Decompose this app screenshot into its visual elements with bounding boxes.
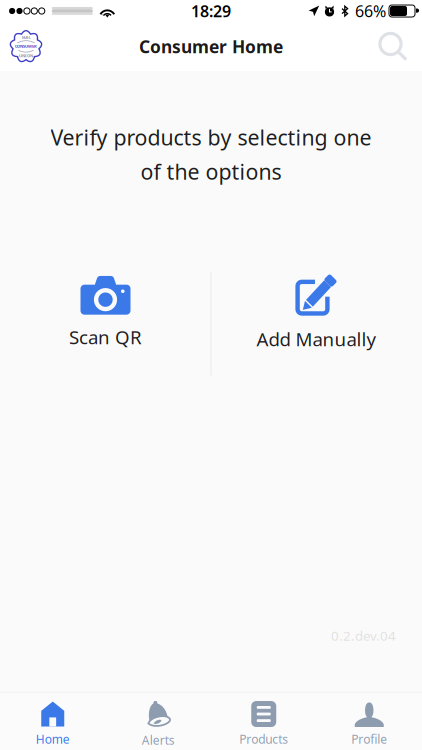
- button[interactable]: Scan QR: [0, 265, 211, 377]
- staticText: CONSUMER: [15, 44, 37, 49]
- staticText: UNION: [19, 53, 33, 58]
- staticText: 18:29: [191, 0, 231, 22]
- button[interactable]: Alerts: [105, 693, 211, 750]
- button[interactable]: Profile: [316, 693, 422, 750]
- staticText: SEAL: [21, 35, 30, 40]
- staticText: Scan QR: [69, 325, 142, 349]
- button[interactable]: Add Manually: [211, 265, 422, 377]
- staticText: Verify products by selecting one: [50, 123, 371, 151]
- button[interactable]: Products: [211, 693, 316, 750]
- button[interactable]: Search: [370, 23, 416, 69]
- staticText: Alerts: [142, 732, 175, 748]
- button[interactable]: Home: [0, 693, 105, 750]
- staticText: Home: [36, 731, 70, 747]
- staticText: Add Manually: [256, 327, 376, 351]
- button[interactable]: Consumer Seal: [4, 23, 48, 69]
- staticText: Profile: [351, 731, 387, 747]
- staticText: of the options: [140, 157, 281, 186]
- staticText: 66%: [355, 0, 386, 22]
- staticText: Products: [239, 731, 288, 747]
- staticText: Consumer Home: [139, 35, 283, 58]
- staticText: 0.2.dev.04: [331, 627, 396, 644]
